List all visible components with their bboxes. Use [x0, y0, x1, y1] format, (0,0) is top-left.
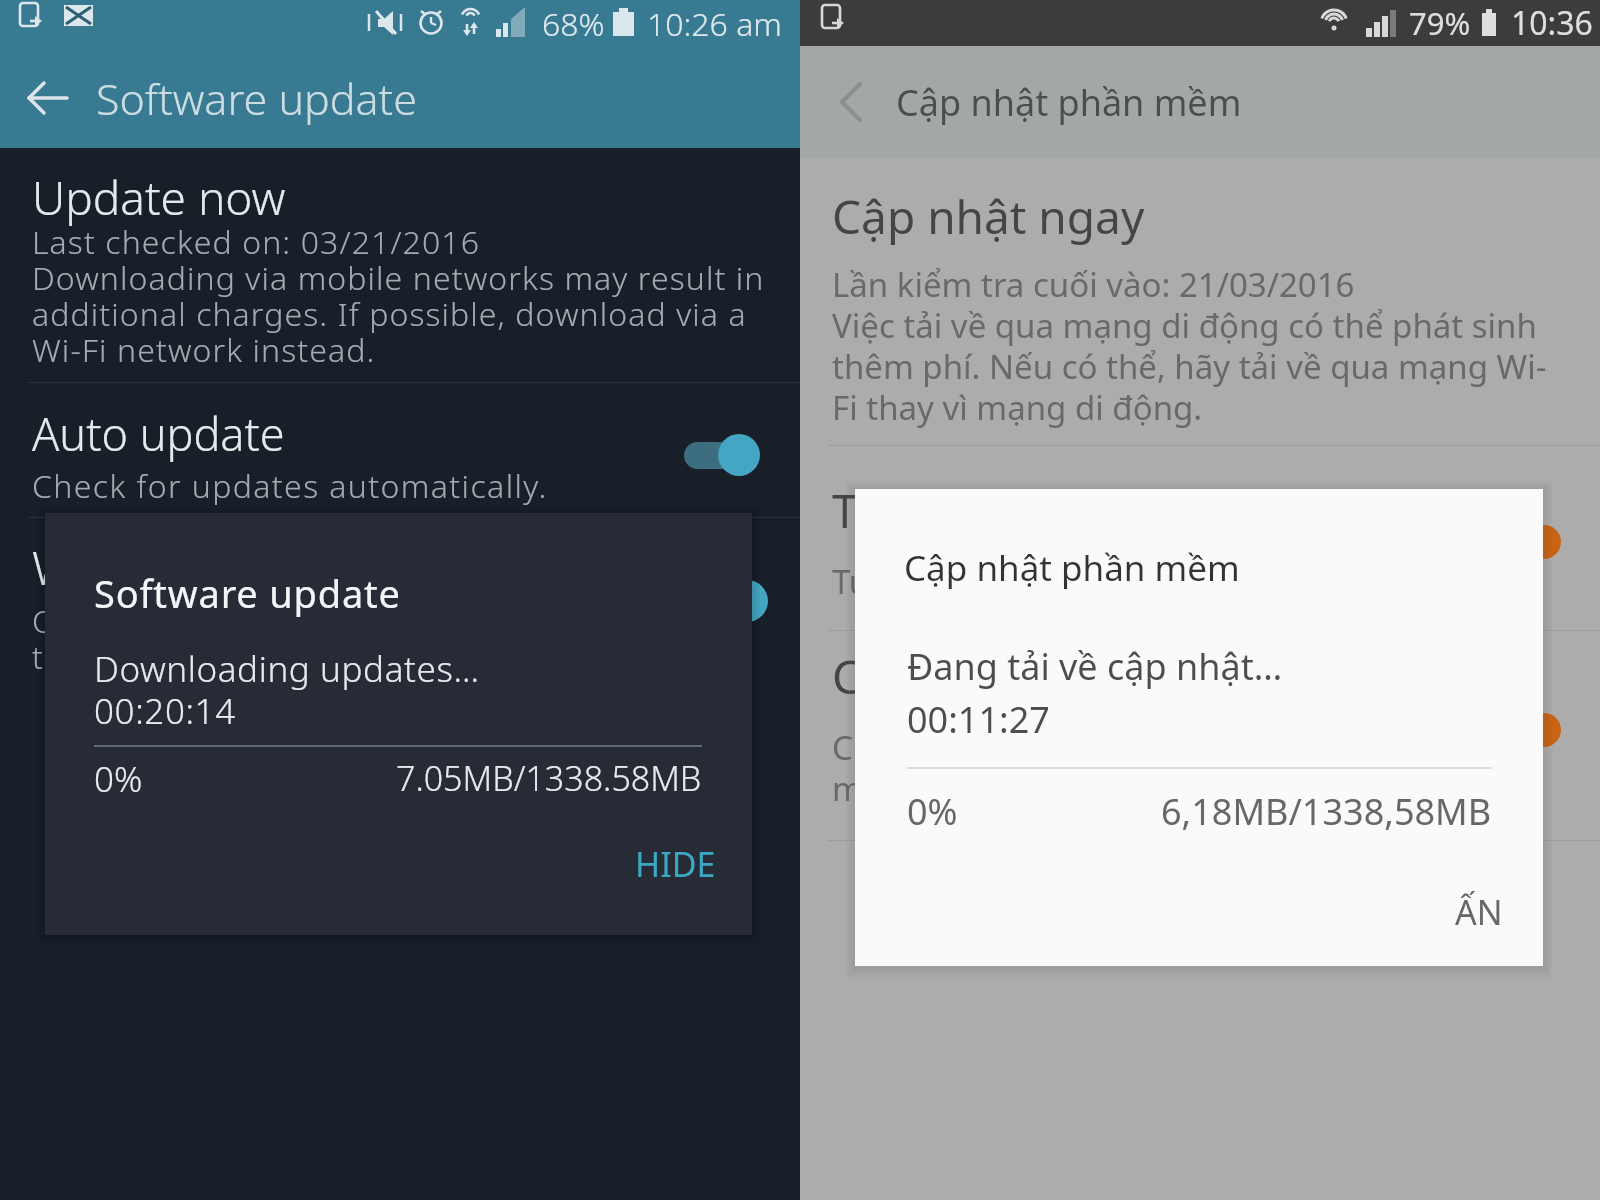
button[interactable]: Auto update — [32, 400, 768, 510]
staticText: Software update — [96, 69, 417, 128]
button[interactable]: Tự động cập nhật — [800, 479, 1600, 639]
staticText: 6,18MB/1338,58MB — [1161, 787, 1492, 836]
staticText: Tự động kiểm tra cập nhật. — [832, 559, 1249, 604]
staticText: Wi-Fi only — [32, 536, 232, 599]
button[interactable]: Back — [0, 48, 800, 148]
staticText: Only download updates over Wi-Fi to avoi… — [32, 599, 571, 679]
button[interactable]: Chỉ Wi-Fi — [1487, 702, 1575, 758]
button[interactable]: ẤN — [1439, 875, 1519, 949]
staticText: 7.05MB/1338.58MB — [396, 755, 702, 801]
button[interactable]: Chỉ Wi-Fi — [800, 645, 1600, 835]
staticText: ẤN — [1455, 889, 1503, 935]
button[interactable]: Back — [800, 46, 1600, 158]
button[interactable]: Wi-Fi only — [686, 573, 776, 629]
staticText: Cập nhật phần mềm — [896, 78, 1242, 127]
button[interactable]: Auto update — [678, 427, 768, 483]
staticText: 10:26 am — [647, 2, 782, 46]
staticText: Đang tải về cập nhật… 00:11:27 — [907, 642, 1283, 743]
staticText: 0% — [94, 755, 143, 803]
staticText: Last checked on: 03/21/2016 Downloading … — [32, 220, 765, 372]
staticText: 0% — [907, 787, 958, 836]
staticText: Lần kiểm tra cuối vào: 21/03/2016 Việc t… — [832, 262, 1547, 430]
staticText: Check for updates automatically. — [32, 464, 548, 508]
staticText: 79% — [1409, 2, 1471, 44]
other: Back — [0, 48, 96, 148]
button[interactable]: HIDE — [619, 827, 732, 901]
staticText: Cập nhật phần mềm — [904, 544, 1240, 592]
staticText: Cập nhật ngay — [832, 185, 1145, 248]
staticText: 68% — [542, 2, 605, 46]
staticText: Chỉ Wi-Fi — [832, 645, 1019, 708]
staticText: Downloading updates… 00:20:14 — [94, 645, 480, 734]
staticText: Tự động cập nhật — [832, 479, 1211, 542]
staticText: HIDE — [635, 841, 716, 887]
staticText: Update now — [32, 166, 286, 229]
button[interactable]: Tự động cập nhật — [1487, 514, 1575, 570]
staticText: 10:36 — [1511, 1, 1593, 45]
button[interactable]: Wi-Fi only — [32, 536, 768, 696]
other: Back — [800, 46, 896, 158]
staticText: Software update — [94, 567, 401, 619]
staticText: Auto update — [32, 403, 285, 464]
staticText: Chỉ tải về cập nhật qua Wi-Fi để tránh m… — [832, 725, 1409, 811]
